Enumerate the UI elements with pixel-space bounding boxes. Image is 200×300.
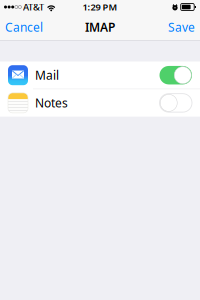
staticText: 1:29 PM xyxy=(82,1,117,13)
button[interactable]: Save xyxy=(163,14,200,40)
button[interactable]: Notes xyxy=(0,89,200,116)
staticText: AT&T xyxy=(23,1,44,13)
button[interactable]: Cancel xyxy=(0,14,48,40)
staticText: Save xyxy=(168,19,195,35)
button[interactable]: Mail xyxy=(0,62,200,89)
staticText: Mail xyxy=(35,67,59,83)
staticText: IMAP xyxy=(85,19,115,35)
staticText: Cancel xyxy=(5,19,43,35)
staticText: Notes xyxy=(35,95,68,111)
